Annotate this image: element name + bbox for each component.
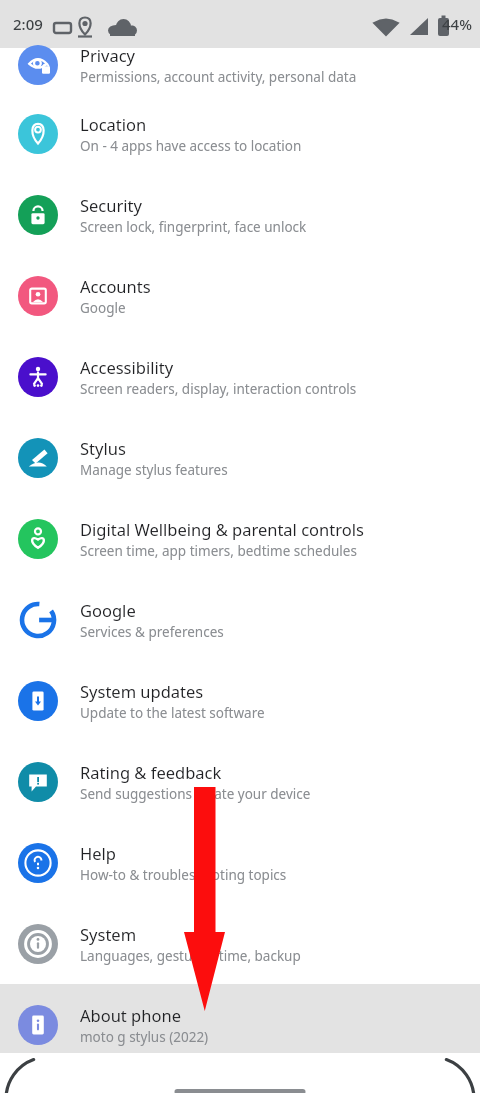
button[interactable]: Digital Wellbeing & parental controls bbox=[0, 498, 480, 579]
staticText: Accounts bbox=[80, 275, 151, 297]
staticText: Services & preferences bbox=[80, 623, 224, 641]
staticText: Location bbox=[80, 113, 147, 135]
staticText: Security bbox=[80, 194, 142, 216]
staticText: Google bbox=[80, 599, 136, 621]
staticText: Privacy bbox=[80, 44, 136, 66]
staticText: How-to & troubleshooting topics bbox=[80, 866, 287, 884]
button[interactable]: Help bbox=[0, 822, 480, 903]
button[interactable]: System updates bbox=[0, 660, 480, 741]
staticText: System updates bbox=[80, 680, 204, 702]
staticText: Send suggestions & rate your device bbox=[80, 785, 311, 803]
staticText: Stylus bbox=[80, 437, 126, 459]
button[interactable]: Security bbox=[0, 174, 480, 255]
button[interactable]: System bbox=[0, 903, 480, 984]
button[interactable]: Stylus bbox=[0, 417, 480, 498]
button[interactable]: About phone bbox=[0, 984, 480, 1065]
staticText: Screen lock, fingerprint, face unlock bbox=[80, 218, 307, 236]
staticText: 2:09 bbox=[13, 14, 43, 34]
button[interactable]: Rating & feedback bbox=[0, 741, 480, 822]
staticText: Accessibility bbox=[80, 356, 174, 378]
staticText: Languages, gestures, time, backup bbox=[80, 947, 301, 965]
button[interactable]: Google bbox=[0, 579, 480, 660]
staticText: moto g stylus (2022) bbox=[80, 1028, 209, 1046]
staticText: Manage stylus features bbox=[80, 461, 228, 479]
staticText: Digital Wellbeing & parental controls bbox=[80, 518, 364, 540]
staticText: Screen time, app timers, bedtime schedul… bbox=[80, 542, 357, 560]
staticText: Help bbox=[80, 842, 116, 864]
button[interactable]: Privacy bbox=[0, 48, 480, 93]
staticText: Update to the latest software bbox=[80, 704, 265, 722]
staticText: On - 4 apps have access to location bbox=[80, 137, 302, 155]
staticText: Screen readers, display, interaction con… bbox=[80, 380, 357, 398]
button[interactable]: Accessibility bbox=[0, 336, 480, 417]
button[interactable]: Location bbox=[0, 93, 480, 174]
staticText: Permissions, account activity, personal … bbox=[80, 68, 357, 86]
staticText: System bbox=[80, 923, 137, 945]
staticText: Google bbox=[80, 299, 126, 317]
button[interactable]: Accounts bbox=[0, 255, 480, 336]
staticText: About phone bbox=[80, 1004, 181, 1026]
staticText: Rating & feedback bbox=[80, 761, 222, 783]
staticText: 44% bbox=[442, 14, 472, 34]
